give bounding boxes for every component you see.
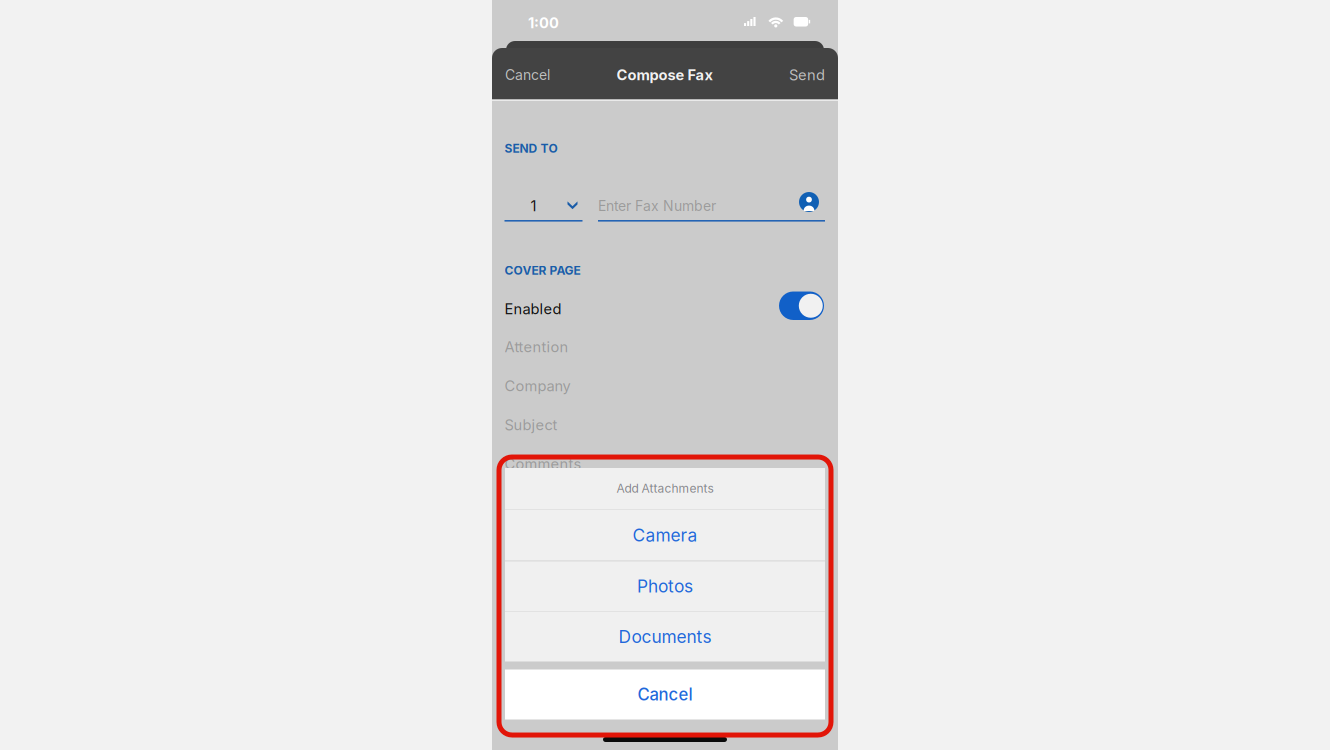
staticText: Comments bbox=[504, 455, 581, 473]
staticText: Compose Fax bbox=[616, 66, 713, 84]
button[interactable]: Attention bbox=[504, 334, 824, 360]
button[interactable]: Camera bbox=[505, 509, 825, 560]
staticText: SEND TO bbox=[504, 141, 557, 155]
staticText: COVER PAGE bbox=[504, 263, 580, 277]
button[interactable]: Cancel bbox=[505, 55, 571, 95]
staticText: Cancel bbox=[637, 684, 692, 705]
staticText: Camera bbox=[632, 525, 697, 546]
button[interactable]: Company bbox=[504, 373, 824, 399]
staticText: Cancel bbox=[505, 66, 550, 83]
staticText: Enter Fax Number bbox=[598, 197, 716, 214]
staticText: 1 bbox=[530, 197, 536, 215]
staticText: Enabled bbox=[504, 300, 561, 318]
button[interactable]: Comments bbox=[504, 451, 824, 477]
button[interactable]: Documents bbox=[505, 611, 825, 661]
staticText: Attention bbox=[504, 338, 568, 356]
staticText: Subject bbox=[504, 416, 557, 434]
button[interactable]: Send bbox=[759, 55, 825, 95]
button[interactable]: Subject bbox=[504, 412, 824, 438]
staticText: Add Attachments bbox=[616, 481, 713, 496]
button[interactable]: Cancel bbox=[505, 669, 825, 719]
staticText: Photos bbox=[637, 576, 693, 597]
button[interactable]: Enter Fax Number bbox=[598, 194, 788, 218]
button[interactable]: Cover page enabled bbox=[779, 291, 824, 320]
staticText: Send bbox=[789, 66, 825, 84]
button[interactable]: Photos bbox=[505, 560, 825, 611]
button[interactable]: Choose contact bbox=[799, 192, 819, 212]
staticText: Documents bbox=[618, 626, 711, 647]
button[interactable]: 1 bbox=[504, 198, 582, 222]
staticText: Company bbox=[504, 377, 570, 395]
staticText: 1:00 bbox=[528, 14, 559, 32]
